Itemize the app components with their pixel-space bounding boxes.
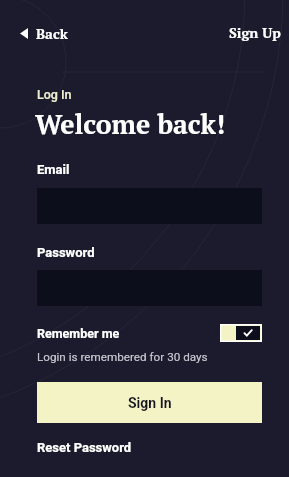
staticText: Back [36,24,68,43]
button[interactable]: Remember me toggle, on [220,324,262,342]
staticText: Reset Password [37,440,132,455]
button[interactable]: Sign In [37,382,262,423]
button[interactable]: Reset Password [37,440,132,455]
staticText: Email [37,162,70,177]
staticText: Welcome back! [35,106,226,141]
staticText: Sign In [128,395,172,411]
staticText: Login is remembered for 30 days [37,350,208,364]
button[interactable]: Back [14,19,74,48]
staticText: Remember me [37,326,120,341]
button[interactable]: Sign Up [223,18,287,47]
staticText: Password [37,245,95,260]
staticText: Log In [37,87,72,102]
staticText: Sign Up [229,23,281,42]
